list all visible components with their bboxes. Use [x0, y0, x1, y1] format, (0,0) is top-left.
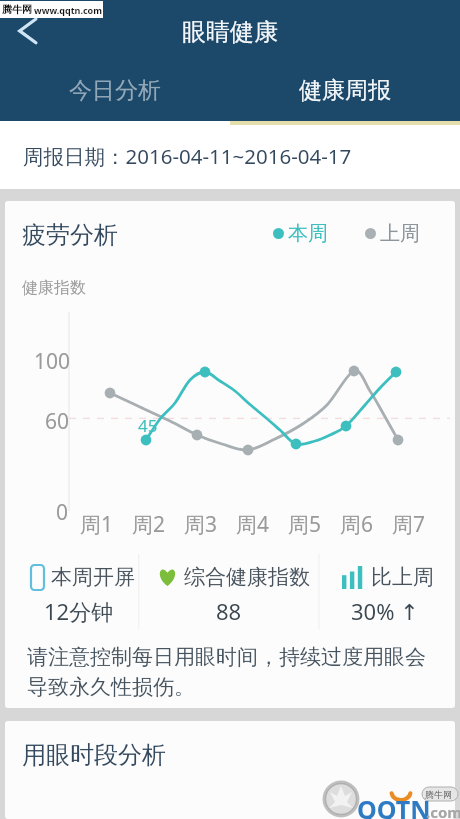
button[interactable]: Back — [6, 8, 50, 52]
staticText: 周3 — [184, 510, 218, 539]
staticText: 上周 — [380, 221, 420, 246]
staticText: www.qqtn.com — [34, 4, 102, 16]
staticText: 88 — [216, 596, 242, 626]
staticText: 比上周 — [371, 564, 434, 590]
button[interactable]: 本周开屏 — [5, 551, 173, 625]
button[interactable]: 健康周报 — [230, 61, 460, 121]
staticText: 疲劳分析 — [22, 220, 118, 250]
staticText: 60 — [45, 407, 70, 436]
staticText: 腾牛网 — [2, 3, 32, 16]
staticText: 周报日期：2016-04-11~2016-04-17 — [23, 142, 352, 170]
staticText: 本周开屏 — [51, 564, 135, 590]
staticText: 周5 — [288, 510, 322, 539]
staticText: 综合健康指数 — [184, 564, 310, 590]
staticText: 健康周报 — [299, 76, 391, 105]
staticText: 周4 — [236, 510, 270, 539]
staticText: 请注意控制每日用眼时间，持续过度用眼会 导致永久性损伤。 — [27, 644, 426, 701]
staticText: 周6 — [340, 510, 374, 539]
staticText: 0 — [56, 498, 69, 527]
staticText: 用眼时段分析 — [22, 740, 166, 770]
staticText: 周2 — [132, 510, 166, 539]
staticText: 12分钟 — [44, 596, 114, 626]
staticText: 45 — [138, 414, 158, 437]
staticText: 健康指数 — [22, 278, 86, 298]
staticText: 腾牛网 — [425, 789, 452, 800]
button[interactable]: 今日分析 — [0, 61, 230, 121]
button[interactable]: 比上周 — [298, 551, 455, 625]
staticText: 100 — [34, 347, 71, 376]
staticText: 周7 — [392, 510, 426, 539]
button[interactable]: 综合健康指数 — [144, 551, 324, 625]
staticText: 周1 — [80, 510, 114, 539]
staticText: 30% ↑ — [351, 596, 419, 626]
staticText: 本周 — [288, 221, 328, 246]
staticText: .com — [426, 802, 460, 819]
staticText: 今日分析 — [69, 76, 161, 105]
staticText: QQTN — [357, 792, 431, 819]
staticText: 眼睛健康 — [182, 17, 278, 47]
